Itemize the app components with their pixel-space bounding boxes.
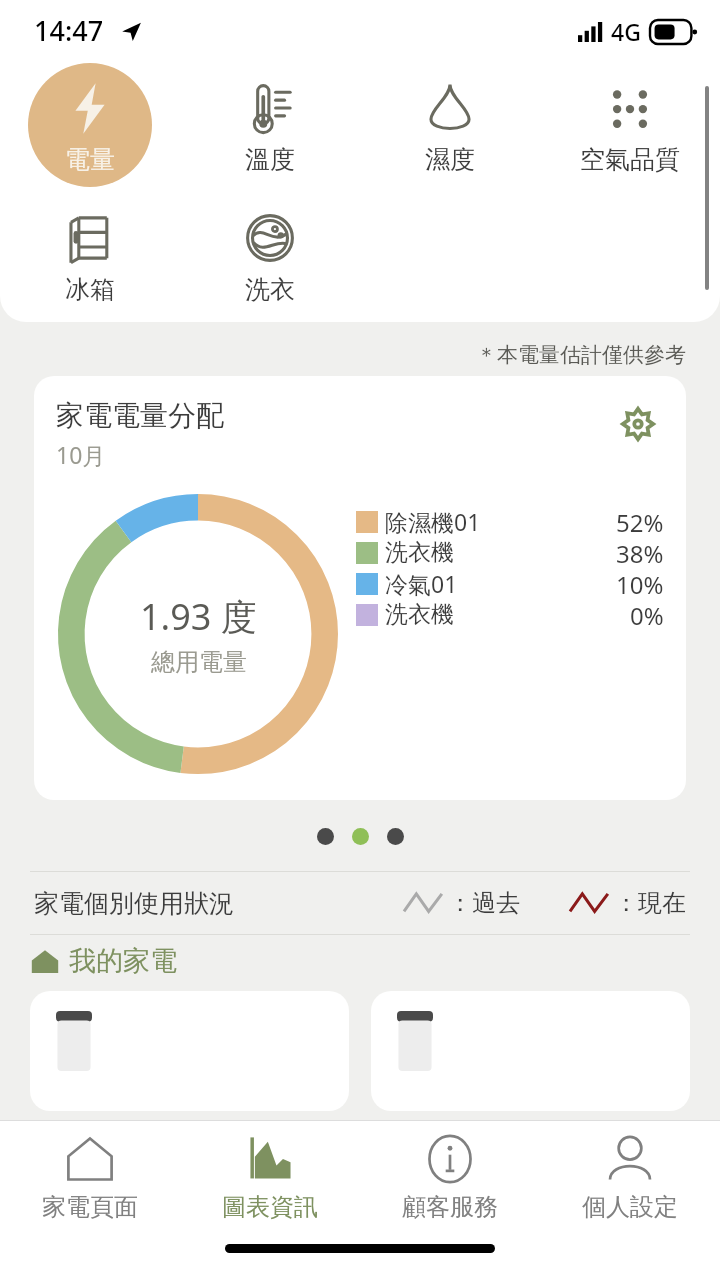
button[interactable] [371, 991, 690, 1111]
button[interactable]: 個人設定 [540, 1121, 720, 1233]
staticText: 冰箱 [65, 274, 115, 305]
button[interactable]: 圖表資訊 [180, 1121, 360, 1233]
staticText: 濕度 [425, 144, 475, 175]
staticText: ＊本電量估計僅供參考 [476, 342, 686, 368]
staticText: ：現在 [614, 888, 686, 918]
staticText: 除濕機01 [385, 506, 616, 537]
button[interactable]: 冰箱 [0, 192, 180, 322]
staticText: 4G [611, 16, 641, 47]
button[interactable]: Settings [612, 398, 664, 450]
staticText: 0% [630, 599, 664, 630]
staticText: 10% [616, 568, 664, 599]
staticText: 家電電量分配 [56, 398, 224, 433]
staticText: 顧客服務 [402, 1192, 498, 1222]
staticText: ：過去 [448, 888, 520, 918]
staticText: 冷氣01 [385, 568, 616, 599]
button[interactable]: 溫度 [180, 62, 360, 192]
staticText: 1.93 度 [140, 592, 257, 641]
button[interactable]: 洗衣 [180, 192, 360, 322]
button[interactable] [317, 828, 334, 845]
staticText: 溫度 [245, 144, 295, 175]
staticText: 家電頁面 [42, 1192, 138, 1222]
button[interactable]: 顧客服務 [360, 1121, 540, 1233]
button[interactable]: 空氣品質 [540, 62, 720, 192]
staticText: 空氣品質 [580, 144, 680, 175]
button[interactable]: 濕度 [360, 62, 540, 192]
button[interactable]: 家電頁面 [0, 1121, 180, 1233]
staticText: 我的家電 [69, 944, 177, 978]
button[interactable] [387, 828, 404, 845]
staticText: 家電個別使用狀況 [34, 888, 234, 919]
button[interactable] [352, 828, 369, 845]
staticText: 38% [616, 537, 664, 568]
button[interactable] [30, 991, 349, 1111]
button[interactable]: 電量 [0, 62, 180, 192]
staticText: 52% [616, 506, 664, 537]
staticText: 洗衣機 [385, 600, 630, 629]
staticText: 圖表資訊 [222, 1192, 318, 1222]
staticText: 洗衣機 [385, 538, 616, 567]
staticText: 10月 [56, 439, 106, 470]
staticText: 14:47 [34, 12, 104, 49]
staticText: 總用電量 [151, 647, 247, 677]
staticText: 電量 [65, 144, 115, 175]
staticText: 個人設定 [582, 1192, 678, 1222]
staticText: 洗衣 [245, 274, 295, 305]
